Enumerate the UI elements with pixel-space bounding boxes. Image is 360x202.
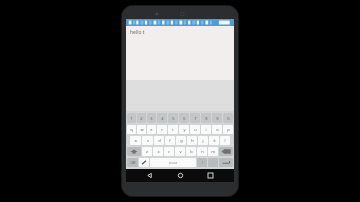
staticText: k [213,138,216,143]
staticText: n [201,149,204,154]
button[interactable]: o [212,125,222,134]
button[interactable]: m [208,147,218,156]
button[interactable]: 7 [190,113,200,123]
staticText: 8 [205,116,208,121]
staticText: u [194,127,197,132]
button[interactable]: e [147,125,156,134]
button[interactable]: Back [143,169,156,182]
button[interactable]: hello t [126,26,234,80]
button[interactable]: y [179,125,189,134]
staticText: i [205,127,207,132]
button[interactable]: j [198,136,208,145]
button[interactable]: l [220,136,230,145]
button[interactable]: 4 [157,113,167,123]
staticText: 7 [194,116,197,121]
staticText: e [150,127,153,132]
button[interactable]: 1 [127,113,136,123]
button[interactable]: Backspace [219,147,233,156]
staticText: f [169,138,171,143]
button[interactable]: v [175,147,185,156]
button[interactable]: c [164,147,174,156]
button[interactable]: 2 [137,113,146,123]
button[interactable]: s [142,136,153,145]
staticText: x [157,149,160,154]
staticText: b [190,149,193,154]
button[interactable]: Enter [219,158,233,167]
staticText: m [211,149,215,154]
button[interactable]: b [186,147,196,156]
staticText: w [140,127,144,132]
staticText: j [202,138,204,143]
staticText: 4 [161,116,164,121]
button[interactable]: w [137,125,146,134]
button[interactable]: g [176,136,186,145]
button[interactable]: OM [127,158,138,167]
button[interactable]: Space [150,158,196,167]
button[interactable]: 6 [179,113,189,123]
staticText: v [179,149,182,154]
staticText: 1 [130,116,133,121]
button[interactable]: f [165,136,175,145]
staticText: l [224,138,226,143]
staticText: . [213,160,214,165]
staticText: 6 [183,116,186,121]
staticText: 0 [227,116,230,121]
button[interactable]: Voice input [139,158,149,167]
staticText: 5 [172,116,175,121]
staticText: a [134,138,137,143]
staticText: 3 [150,116,153,121]
button[interactable]: z [142,147,152,156]
button[interactable]: r [157,125,167,134]
button[interactable]: i [201,125,211,134]
button[interactable]: u [190,125,200,134]
button[interactable]: h [187,136,197,145]
button[interactable]: x [153,147,163,156]
staticText: r [161,127,163,132]
button[interactable]: 9 [212,113,222,123]
staticText: c [168,149,170,154]
button[interactable]: a [130,136,141,145]
staticText: y [183,127,186,132]
staticText: p [227,127,230,132]
button[interactable]: 5 [168,113,178,123]
staticText: 2 [140,116,143,121]
staticText: t [172,127,174,132]
button[interactable]: 0 [223,113,233,123]
button[interactable]: ! [197,158,207,167]
button[interactable]: Shift [127,147,141,156]
staticText: ! [202,160,203,165]
staticText: hello t [130,29,145,36]
button[interactable]: Recent apps [204,169,217,182]
button[interactable]: t [168,125,178,134]
staticText: o [216,127,219,132]
button[interactable]: n [197,147,207,156]
staticText: h [191,138,194,143]
staticText: 9 [216,116,219,121]
staticText: q [130,127,133,132]
staticText: z [146,149,148,154]
button[interactable]: p [223,125,233,134]
button[interactable]: d [154,136,164,145]
button[interactable]: q [127,125,136,134]
staticText: g [180,138,183,143]
staticText: OM [130,161,136,165]
button[interactable]: 3 [147,113,156,123]
button[interactable]: Home [174,169,187,182]
button[interactable]: 8 [201,113,211,123]
staticText: d [158,138,161,143]
button[interactable]: k [209,136,219,145]
staticText: s [147,138,149,143]
